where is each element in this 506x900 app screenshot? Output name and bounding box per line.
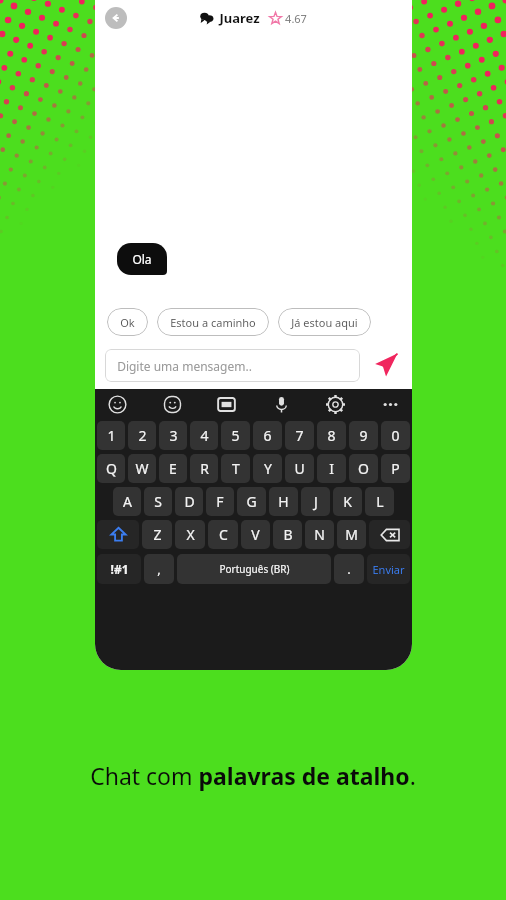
button[interactable]: Shift (97, 520, 139, 549)
button[interactable]: 6 (253, 421, 282, 450)
staticText: Juarez (219, 9, 260, 27)
button[interactable]: U (285, 454, 314, 483)
button[interactable]: Português (BR) (177, 554, 331, 584)
staticText: G (246, 492, 257, 511)
button[interactable]: . (334, 554, 364, 584)
button[interactable]: C (208, 520, 238, 549)
staticText: Ok (120, 315, 135, 330)
button[interactable]: 3 (159, 421, 187, 450)
staticText: Ola (132, 251, 152, 267)
button[interactable]: Voice input (269, 392, 293, 416)
button[interactable]: X (175, 520, 205, 549)
staticText: J (314, 492, 318, 511)
button[interactable]: E (159, 454, 187, 483)
button[interactable]: Enviar (367, 554, 410, 584)
button[interactable]: More options (378, 392, 402, 416)
button[interactable]: O (349, 454, 378, 483)
button[interactable]: GIF (214, 392, 238, 416)
button[interactable]: J (301, 487, 330, 516)
button[interactable]: B (273, 520, 302, 549)
staticText: Português (BR) (219, 562, 290, 576)
button[interactable]: 8 (317, 421, 346, 450)
button[interactable]: Y (253, 454, 282, 483)
staticText: T (232, 459, 240, 478)
staticText: U (294, 459, 305, 478)
staticText: 8 (327, 426, 336, 445)
staticText: I (329, 459, 334, 478)
staticText: B (283, 525, 293, 544)
button[interactable]: 5 (221, 421, 250, 450)
staticText: F (216, 492, 224, 511)
button[interactable]: N (305, 520, 334, 549)
button[interactable]: H (269, 487, 298, 516)
button[interactable]: 2 (128, 421, 156, 450)
staticText: . (347, 560, 351, 578)
button[interactable]: V (241, 520, 270, 549)
button[interactable]: M (337, 520, 366, 549)
staticText: Já estou aqui (291, 315, 358, 330)
staticText: R (200, 459, 209, 478)
button[interactable]: Já estou aqui (278, 308, 371, 336)
staticText: A (123, 492, 132, 511)
staticText: L (376, 492, 384, 511)
staticText: X (186, 525, 195, 544)
button[interactable]: Z (142, 520, 172, 549)
staticText: 1 (107, 426, 116, 445)
button[interactable]: W (128, 454, 156, 483)
button[interactable]: , (144, 554, 174, 584)
button[interactable]: Stickers (160, 392, 184, 416)
button[interactable]: R (190, 454, 218, 483)
staticText: Y (264, 459, 272, 478)
button[interactable]: S (144, 487, 172, 516)
staticText: , (157, 560, 161, 578)
button[interactable]: 1 (97, 421, 125, 450)
button[interactable]: Digite uma mensagem.. (105, 349, 360, 382)
staticText: Enviar (372, 562, 405, 577)
staticText: 7 (295, 426, 304, 445)
button[interactable]: Back (105, 7, 127, 29)
staticText: E (169, 459, 177, 478)
staticText: 0 (391, 426, 400, 445)
staticText: Chat com palavras de atalho. (90, 760, 416, 791)
staticText: N (314, 525, 325, 544)
staticText: M (345, 525, 358, 544)
button[interactable]: Ok (107, 308, 148, 336)
staticText: D (184, 492, 195, 511)
staticText: Estou a caminho (170, 315, 256, 330)
button[interactable]: L (365, 487, 394, 516)
button[interactable]: Q (97, 454, 125, 483)
staticText: O (358, 459, 369, 478)
staticText: 2 (138, 426, 147, 445)
button[interactable]: D (175, 487, 203, 516)
button[interactable]: 0 (381, 421, 410, 450)
button[interactable]: 7 (285, 421, 314, 450)
button[interactable]: Send (368, 348, 402, 382)
staticText: 3 (169, 426, 178, 445)
button[interactable]: I (317, 454, 346, 483)
staticText: 4.67 (285, 11, 307, 26)
staticText: 4 (200, 426, 209, 445)
button[interactable]: T (221, 454, 250, 483)
button[interactable]: Emoji (105, 392, 129, 416)
staticText: P (391, 459, 400, 478)
button[interactable]: A (113, 487, 141, 516)
button[interactable]: 4 (190, 421, 218, 450)
staticText: Q (106, 459, 117, 478)
button[interactable]: F (206, 487, 234, 516)
button[interactable]: !#1 (97, 554, 141, 584)
staticText: Digite uma mensagem.. (117, 358, 252, 374)
staticText: C (219, 525, 228, 544)
button[interactable]: P (381, 454, 410, 483)
staticText: 6 (263, 426, 272, 445)
staticText: K (343, 492, 352, 511)
button[interactable]: 9 (349, 421, 378, 450)
button[interactable]: Estou a caminho (157, 308, 269, 336)
button[interactable]: Backspace (369, 520, 410, 549)
staticText: 9 (359, 426, 368, 445)
button[interactable]: Settings (323, 392, 347, 416)
button[interactable]: K (333, 487, 362, 516)
staticText: V (251, 525, 260, 544)
button[interactable]: G (237, 487, 266, 516)
button[interactable]: Ola (117, 243, 167, 275)
staticText: Z (153, 525, 162, 544)
